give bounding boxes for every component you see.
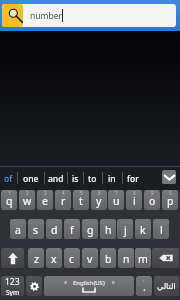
button[interactable]: . — [136, 276, 152, 296]
button[interactable]: k — [135, 219, 151, 239]
staticText: o — [149, 194, 156, 208]
staticText: q — [6, 194, 13, 208]
staticText: t — [79, 194, 83, 208]
button[interactable]: Settings — [26, 276, 42, 296]
button[interactable]: for — [122, 167, 143, 190]
staticText: m — [138, 252, 148, 266]
button[interactable]: e — [37, 190, 53, 210]
staticText: التالي — [157, 282, 176, 291]
button[interactable]: o — [144, 190, 160, 210]
staticText: number — [30, 10, 62, 22]
staticText: e — [42, 194, 48, 208]
staticText: 5 — [80, 190, 83, 196]
button[interactable]: x — [46, 248, 62, 268]
button[interactable]: Shift — [1, 248, 24, 268]
staticText: v — [87, 252, 93, 266]
button[interactable]: is — [67, 167, 83, 190]
button[interactable]: Space — [44, 276, 134, 296]
button[interactable]: s — [28, 219, 44, 239]
button[interactable]: c — [64, 248, 80, 268]
button[interactable]: Show more suggestions — [162, 170, 176, 184]
staticText: 0 — [169, 190, 172, 196]
staticText: w — [23, 194, 32, 208]
button[interactable]: j — [117, 219, 133, 239]
staticText: is — [72, 173, 79, 185]
button[interactable]: f — [64, 219, 80, 239]
button[interactable]: r — [55, 190, 71, 210]
staticText: a — [15, 223, 21, 237]
button[interactable]: one — [17, 167, 44, 190]
staticText: j — [124, 223, 127, 237]
staticText: in — [108, 173, 116, 185]
button[interactable]: i — [126, 190, 142, 210]
staticText: 123 — [5, 276, 20, 288]
staticText: . — [143, 280, 146, 294]
staticText: n — [123, 252, 130, 266]
button[interactable]: u — [108, 190, 124, 210]
staticText: 2 — [26, 190, 29, 196]
staticText: Sym — [6, 288, 19, 296]
button[interactable]: y — [91, 190, 107, 210]
staticText: 1 — [8, 190, 11, 196]
button[interactable]: m — [135, 248, 151, 268]
staticText: 9 — [151, 190, 154, 196]
button[interactable]: z — [28, 248, 44, 268]
staticText: 3 — [44, 190, 47, 196]
button[interactable]: v — [82, 248, 98, 268]
staticText: l — [160, 223, 163, 237]
button[interactable]: b — [100, 248, 116, 268]
button[interactable]: l — [153, 219, 169, 239]
other: Search — [2, 4, 23, 27]
staticText: r — [61, 194, 66, 208]
button[interactable]: التالي — [154, 276, 179, 296]
staticText: x — [51, 252, 57, 266]
staticText: 8 — [133, 190, 136, 196]
staticText: of — [4, 173, 13, 185]
staticText: d — [51, 223, 58, 237]
button[interactable]: of — [0, 167, 17, 190]
staticText: f — [70, 223, 74, 237]
button[interactable]: Search — [2, 4, 176, 27]
button[interactable]: p — [162, 190, 178, 210]
button[interactable]: Backspace — [152, 248, 179, 268]
button[interactable]: Symbols — [1, 276, 24, 296]
button[interactable]: n — [118, 248, 134, 268]
staticText: to — [88, 173, 97, 185]
staticText: y — [96, 194, 102, 208]
button[interactable]: in — [102, 167, 122, 190]
staticText: 7 — [115, 190, 118, 196]
staticText: one — [23, 173, 39, 185]
button[interactable]: and — [44, 167, 67, 190]
button[interactable]: w — [19, 190, 35, 210]
staticText: 4 — [62, 190, 65, 196]
button[interactable]: g — [82, 219, 98, 239]
staticText: z — [34, 252, 39, 266]
staticText: h — [105, 223, 112, 237]
staticText: c — [69, 252, 75, 266]
staticText: English(US) — [73, 279, 105, 287]
staticText: and — [48, 173, 64, 185]
staticText: 6 — [98, 190, 101, 196]
staticText: for — [127, 173, 139, 185]
staticText: , — [143, 276, 145, 282]
button[interactable]: h — [100, 219, 116, 239]
staticText: b — [105, 252, 112, 266]
staticText: k — [140, 223, 146, 237]
staticText: g — [87, 223, 94, 237]
button[interactable]: d — [46, 219, 62, 239]
button[interactable]: t — [73, 190, 89, 210]
staticText: p — [167, 194, 174, 208]
button[interactable]: a — [10, 219, 26, 239]
button[interactable]: to — [83, 167, 102, 190]
staticText: i — [133, 194, 136, 208]
button[interactable]: q — [1, 190, 17, 210]
staticText: u — [113, 194, 120, 208]
staticText: s — [33, 223, 39, 237]
